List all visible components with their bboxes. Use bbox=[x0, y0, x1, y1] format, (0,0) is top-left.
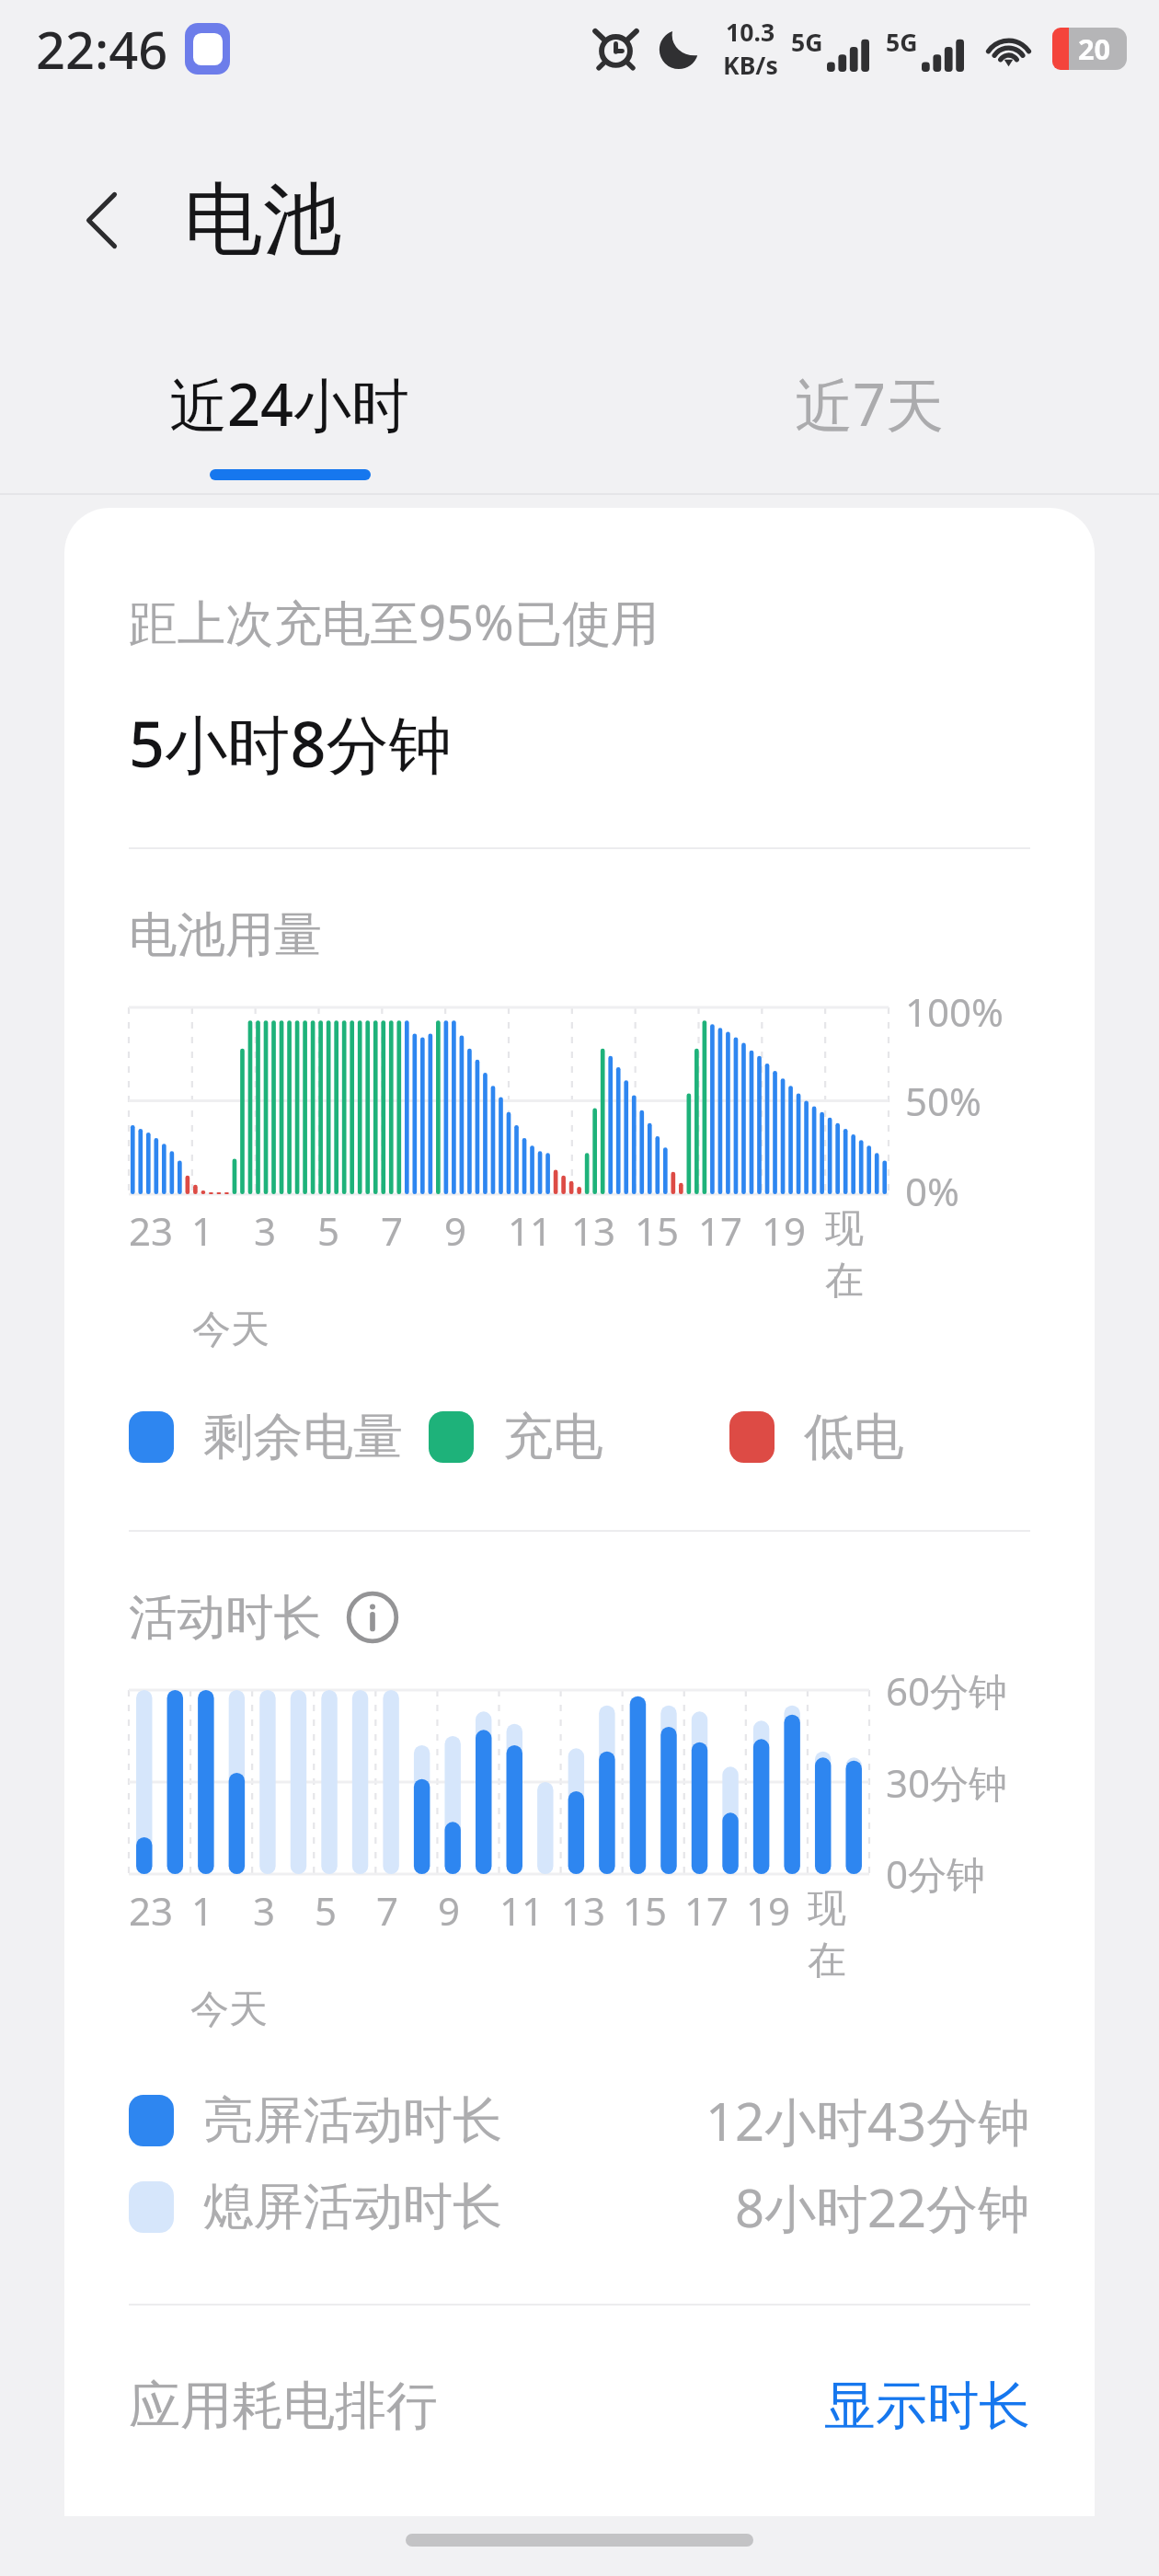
staticText: 19 bbox=[762, 1204, 807, 1257]
staticText: 13 bbox=[571, 1204, 616, 1257]
staticText: 7 bbox=[376, 1884, 399, 1937]
staticText: 5 bbox=[315, 1884, 338, 1937]
staticText: 显示时长 bbox=[824, 2374, 1030, 2439]
staticText: 电池 bbox=[184, 170, 342, 270]
staticText: 50% bbox=[905, 1075, 981, 1127]
staticText: 1 bbox=[191, 1884, 214, 1937]
staticText: 23 bbox=[129, 1884, 174, 1937]
button[interactable]: 近24小时 bbox=[0, 364, 579, 493]
staticText: KB/s bbox=[723, 49, 778, 82]
button[interactable]: 近7天 bbox=[579, 364, 1159, 493]
staticText: 0分钟 bbox=[886, 1847, 986, 1900]
staticText: 亮屏活动时长 bbox=[203, 2089, 503, 2152]
staticText: 19 bbox=[746, 1884, 791, 1937]
staticText: 距上次充电至95%已使用 bbox=[129, 589, 660, 655]
staticText: 剩余电量 bbox=[203, 1406, 403, 1468]
staticText: 应用耗电排行 bbox=[129, 2374, 438, 2439]
staticText: 9 bbox=[444, 1204, 467, 1257]
staticText: 低电 bbox=[804, 1406, 904, 1468]
staticText: 今天 bbox=[190, 1985, 268, 2034]
staticText: 活动时长 bbox=[129, 1587, 322, 1648]
staticText: 5小时8分钟 bbox=[129, 700, 453, 786]
staticText: 23 bbox=[129, 1204, 174, 1257]
staticText: 60分钟 bbox=[886, 1664, 1008, 1717]
staticText: 11 bbox=[508, 1204, 553, 1257]
staticText: 熄屏活动时长 bbox=[203, 2176, 503, 2238]
button[interactable]: 应用耗电排行 bbox=[129, 2374, 1030, 2439]
staticText: 17 bbox=[684, 1884, 729, 1937]
staticText: 充电 bbox=[503, 1406, 603, 1468]
staticText: 11 bbox=[499, 1884, 545, 1937]
staticText: 1 bbox=[191, 1204, 214, 1257]
staticText: 7 bbox=[381, 1204, 404, 1257]
staticText: 近7天 bbox=[795, 364, 945, 443]
staticText: 17 bbox=[698, 1204, 743, 1257]
staticText: 3 bbox=[254, 1204, 277, 1257]
button[interactable]: Back bbox=[32, 149, 174, 291]
staticText: 现在 bbox=[808, 1884, 869, 1985]
staticText: 15 bbox=[635, 1204, 680, 1257]
staticText: 13 bbox=[561, 1884, 606, 1937]
staticText: 20 bbox=[1078, 29, 1111, 68]
button[interactable]: Info bbox=[345, 1590, 400, 1645]
staticText: 5G bbox=[886, 26, 918, 59]
staticText: 100% bbox=[905, 985, 1004, 1038]
staticText: 9 bbox=[438, 1884, 461, 1937]
staticText: 30分钟 bbox=[886, 1756, 1008, 1809]
staticText: 5G bbox=[791, 26, 823, 59]
staticText: 22:46 bbox=[36, 14, 168, 84]
staticText: 10.3 bbox=[726, 16, 775, 49]
staticText: 8小时22分钟 bbox=[735, 2172, 1030, 2242]
staticText: 5 bbox=[317, 1204, 340, 1257]
staticText: 3 bbox=[253, 1884, 276, 1937]
staticText: 电池用量 bbox=[129, 904, 322, 965]
staticText: 现在 bbox=[825, 1204, 889, 1305]
staticText: 今天 bbox=[192, 1305, 270, 1354]
staticText: 近24小时 bbox=[169, 364, 410, 443]
staticText: 0% bbox=[905, 1165, 959, 1217]
staticText: 12小时43分钟 bbox=[706, 2086, 1030, 2156]
staticText: 15 bbox=[623, 1884, 668, 1937]
